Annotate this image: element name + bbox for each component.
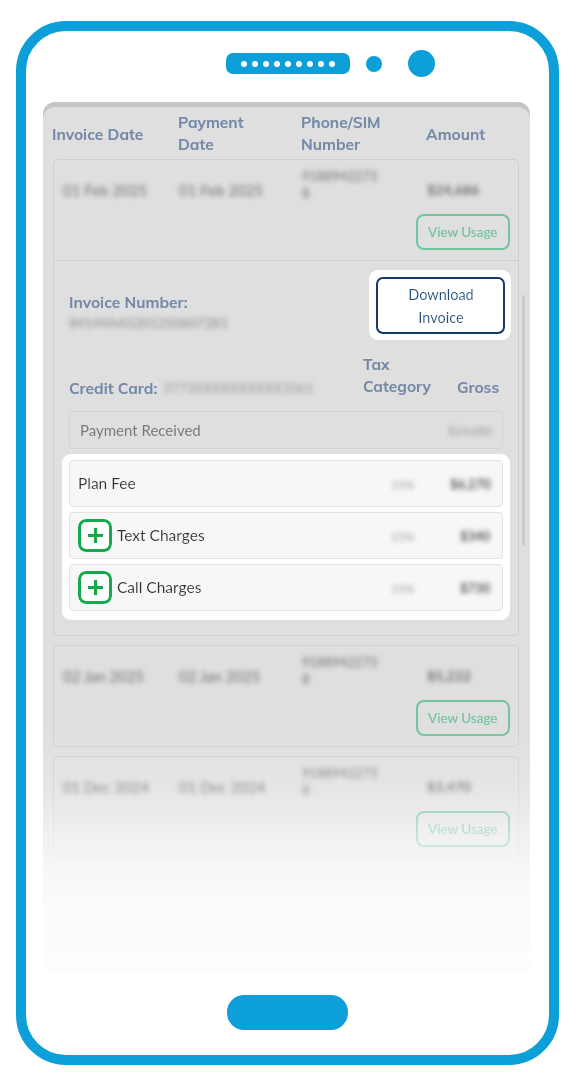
staticText: Call Charges xyxy=(117,578,202,597)
button[interactable]: Download Invoice xyxy=(376,277,505,334)
staticText: 01 Feb 2025 xyxy=(63,181,148,199)
staticText: 9188942273 xyxy=(302,168,378,184)
staticText: Credit Card: xyxy=(69,378,158,397)
staticText: 02 Jan 2025 xyxy=(179,667,261,685)
staticText: 02 Jan 2025 xyxy=(63,667,145,685)
button[interactable]: Home xyxy=(227,995,348,1030)
staticText: Payment Received xyxy=(80,421,201,439)
staticText: $730 xyxy=(460,580,491,596)
staticText: View Usage xyxy=(428,224,498,240)
staticText: 9188942273 xyxy=(302,765,378,781)
staticText: Plan Fee xyxy=(78,474,136,493)
staticText: 84144AA5201250607281 xyxy=(69,315,229,331)
staticText: $24,686 xyxy=(427,181,479,198)
staticText: $3,470 xyxy=(427,778,471,795)
staticText: View Usage xyxy=(428,821,498,837)
staticText: $340 xyxy=(460,528,491,544)
button[interactable]: Text Charges xyxy=(69,512,503,559)
staticText: 01 Dec 2024 xyxy=(179,778,266,796)
staticText: $24,686 xyxy=(448,423,493,437)
button[interactable]: View Usage xyxy=(416,700,510,736)
staticText: 15% xyxy=(391,581,415,595)
staticText: Invoice Date xyxy=(52,124,144,143)
staticText: Invoice Number: xyxy=(69,292,188,311)
button[interactable]: Call Charges xyxy=(69,564,503,611)
staticText: View Usage xyxy=(428,710,498,726)
staticText: 9188942273 xyxy=(302,654,378,670)
staticText: 8 xyxy=(302,782,310,798)
staticText: 15% xyxy=(391,477,415,491)
staticText: Tax Category xyxy=(363,354,432,396)
staticText: Amount xyxy=(426,124,486,143)
staticText: Phone/SIM Number xyxy=(301,112,381,154)
staticText: Payment Date xyxy=(178,112,244,154)
staticText: Text Charges xyxy=(117,526,205,545)
staticText: $6,270 xyxy=(450,476,491,492)
button[interactable]: Plan Fee xyxy=(69,460,503,507)
staticText: 01 Dec 2024 xyxy=(63,778,150,796)
button[interactable]: View Usage xyxy=(416,214,510,250)
staticText: 8 xyxy=(302,185,310,201)
staticText: 01 Feb 2025 xyxy=(179,181,264,199)
staticText: 3773XXXXXXXXXX1065 xyxy=(163,380,314,396)
staticText: 8 xyxy=(302,671,310,687)
staticText: $5,222 xyxy=(427,667,471,684)
staticText: Download Invoice xyxy=(408,286,474,326)
button[interactable]: View Usage xyxy=(416,811,510,847)
staticText: Gross xyxy=(457,377,500,396)
staticText: 15% xyxy=(391,529,415,543)
button[interactable]: Payment Received xyxy=(69,411,503,449)
